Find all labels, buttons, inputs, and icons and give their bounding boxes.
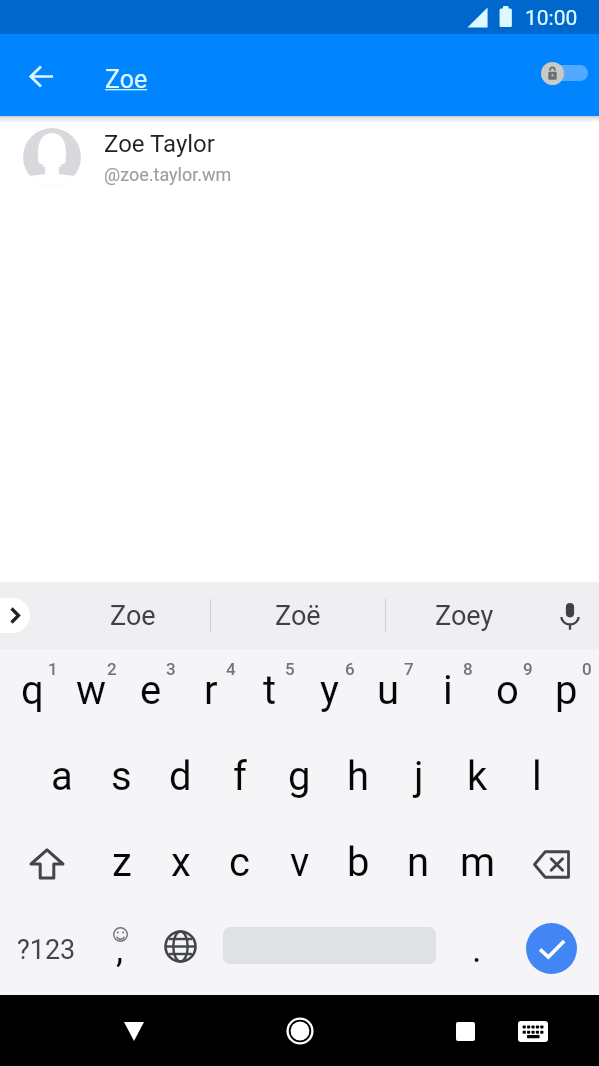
staticText: q (21, 667, 44, 714)
button[interactable]: Encryption lock (534, 55, 592, 91)
staticText: 7 (404, 659, 414, 679)
button[interactable]: Voice input (546, 592, 594, 640)
button[interactable]: Change language (149, 907, 211, 995)
button[interactable]: Zoe Taylor (0, 111, 599, 203)
button[interactable]: k (448, 735, 507, 821)
staticText: 1 (48, 659, 58, 679)
staticText: r (204, 667, 218, 714)
button[interactable]: Zoe (49, 582, 216, 649)
button[interactable]: c (210, 821, 269, 907)
button[interactable]: Back (109, 1006, 159, 1056)
button[interactable]: Show more suggestions (0, 598, 30, 633)
staticText: j (414, 753, 424, 800)
staticText: v (290, 839, 310, 886)
staticText: 2 (107, 659, 117, 679)
staticText: 4 (226, 659, 236, 679)
button[interactable]: , (93, 907, 149, 995)
staticText: Zoe (105, 65, 148, 94)
button[interactable]: i (418, 649, 477, 735)
staticText: u (377, 667, 400, 714)
staticText: p (555, 667, 578, 714)
button[interactable]: Enter (507, 907, 596, 995)
staticText: a (51, 753, 73, 800)
button[interactable]: Navigate up (17, 51, 65, 99)
staticText: y (320, 667, 339, 714)
staticText: 0 (582, 659, 592, 679)
staticText: Zoey (435, 600, 494, 632)
button[interactable]: g (270, 735, 329, 821)
button[interactable]: n (389, 821, 448, 907)
staticText: h (347, 753, 370, 800)
staticText: Zoe (110, 600, 156, 632)
button[interactable]: ?123 (0, 907, 93, 995)
staticText: f (233, 753, 247, 800)
staticText: Zoe Taylor (104, 130, 215, 158)
button[interactable]: Home (274, 1006, 324, 1056)
staticText: 8 (463, 659, 473, 679)
staticText: g (288, 753, 311, 800)
button[interactable]: j (389, 735, 448, 821)
button[interactable]: Recent apps (439, 1006, 489, 1056)
button[interactable]: Shift (3, 821, 91, 907)
button[interactable]: x (151, 821, 210, 907)
button[interactable]: l (507, 735, 566, 821)
staticText: i (443, 667, 453, 714)
button[interactable]: u (359, 649, 418, 735)
staticText: c (229, 839, 250, 886)
staticText: o (496, 667, 519, 714)
staticText: 6 (345, 659, 355, 679)
staticText: l (532, 753, 542, 800)
staticText: ?123 (17, 934, 76, 966)
button[interactable]: f (210, 735, 269, 821)
staticText: 10:00 (525, 6, 578, 31)
staticText: @zoe.taylor.wm (104, 164, 232, 185)
button[interactable]: Switch keyboard (507, 1006, 557, 1056)
staticText: e (140, 667, 162, 714)
staticText: x (171, 839, 191, 886)
staticText: 9 (523, 659, 533, 679)
button[interactable]: w (62, 649, 121, 735)
staticText: z (112, 839, 132, 886)
button[interactable]: Backspace (507, 821, 595, 907)
staticText: k (467, 753, 488, 800)
button[interactable]: h (329, 735, 388, 821)
button[interactable]: Zoë (214, 582, 381, 649)
button[interactable]: t (240, 649, 299, 735)
staticText: m (460, 839, 496, 886)
staticText: 5 (285, 659, 295, 679)
staticText: d (169, 753, 192, 800)
button[interactable]: v (270, 821, 329, 907)
button[interactable]: e (121, 649, 180, 735)
button[interactable]: Zoe (105, 50, 148, 108)
staticText: s (111, 753, 132, 800)
staticText: b (347, 839, 370, 886)
button[interactable]: . (447, 907, 507, 995)
button[interactable]: m (448, 821, 507, 907)
button[interactable]: r (181, 649, 240, 735)
button[interactable]: o (478, 649, 537, 735)
button[interactable]: p (537, 649, 596, 735)
button[interactable]: z (92, 821, 151, 907)
button[interactable]: b (329, 821, 388, 907)
button[interactable]: Zoey (381, 582, 548, 649)
staticText: , (116, 929, 124, 971)
button[interactable]: a (32, 735, 91, 821)
button[interactable]: Space (211, 907, 447, 995)
button[interactable]: q (3, 649, 62, 735)
staticText: n (407, 839, 430, 886)
staticText: 3 (166, 659, 176, 679)
button[interactable]: s (92, 735, 151, 821)
staticText: w (76, 667, 107, 714)
staticText: t (263, 667, 277, 714)
button[interactable]: d (151, 735, 210, 821)
staticText: Zoë (275, 600, 321, 632)
staticText: . (472, 929, 482, 971)
button[interactable]: y (300, 649, 359, 735)
